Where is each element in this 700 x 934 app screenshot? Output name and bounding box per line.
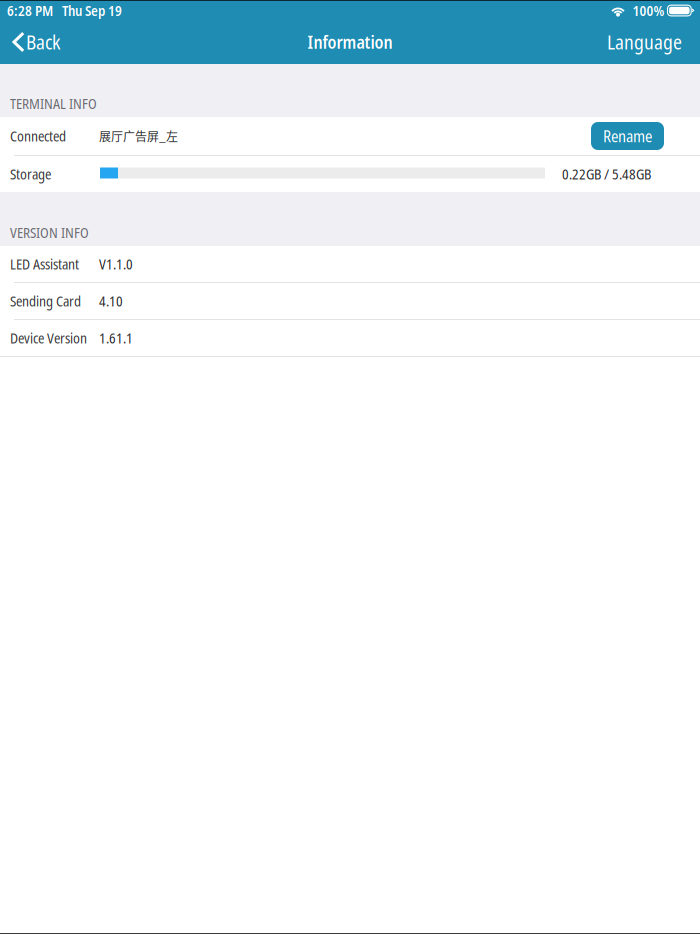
- staticText: V1.1.0: [99, 254, 133, 274]
- staticText: LED Assistant: [10, 254, 79, 274]
- staticText: Back: [26, 29, 60, 55]
- staticText: 4.10: [99, 291, 123, 311]
- staticText: Rename: [603, 125, 652, 147]
- staticText: TERMINAL INFO: [10, 94, 97, 113]
- button[interactable]: Rename: [591, 122, 664, 150]
- staticText: Information: [307, 30, 392, 54]
- staticText: Storage: [10, 164, 51, 184]
- staticText: Language: [607, 29, 682, 55]
- staticText: 6:28 PM: [7, 1, 53, 20]
- staticText: Connected: [10, 126, 66, 146]
- staticText: 1.61.1: [99, 328, 133, 348]
- staticText: Sending Card: [10, 291, 81, 311]
- staticText: 100%: [632, 1, 664, 20]
- staticText: VERSION INFO: [10, 223, 89, 242]
- staticText: 展厅广告屏_左: [99, 127, 178, 145]
- staticText: Device Version: [10, 328, 87, 348]
- staticText: Thu Sep 19: [62, 1, 122, 20]
- staticText: 0.22GB / 5.48GB: [562, 164, 651, 184]
- button[interactable]: Language: [597, 20, 700, 63]
- button[interactable]: Back: [0, 20, 70, 63]
